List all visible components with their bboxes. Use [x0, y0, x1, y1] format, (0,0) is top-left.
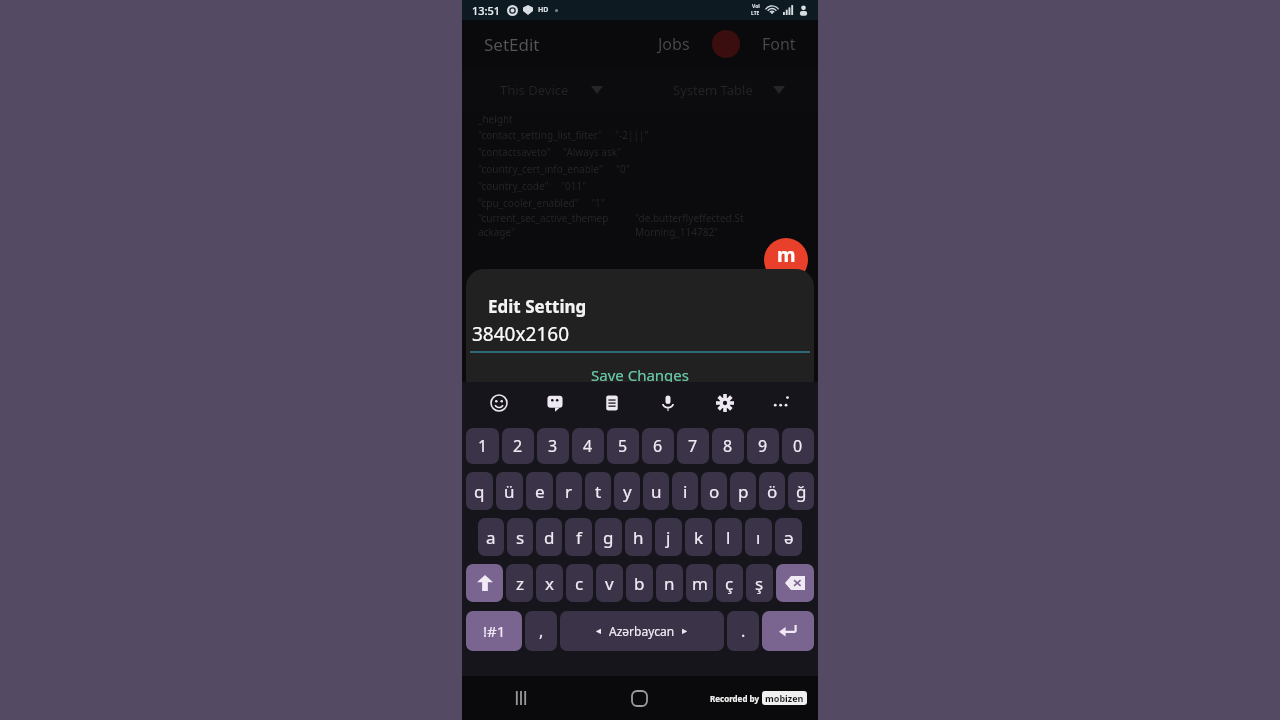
button[interactable]: "contactsaveto": [478, 143, 808, 160]
button[interactable]: ◂: [560, 611, 724, 651]
staticText: 1: [478, 435, 488, 457]
button[interactable]: Record: [712, 30, 740, 58]
button[interactable]: f: [565, 518, 592, 556]
button[interactable]: m: [686, 564, 713, 602]
button[interactable]: 7: [677, 428, 709, 464]
button[interactable]: d: [536, 518, 562, 556]
staticText: 3: [548, 435, 558, 457]
button[interactable]: q: [466, 472, 493, 510]
button[interactable]: This Device: [462, 68, 640, 112]
staticText: x: [545, 572, 554, 595]
button[interactable]: Emoji: [484, 388, 514, 418]
staticText: r: [565, 480, 573, 503]
button[interactable]: a: [478, 518, 504, 556]
button[interactable]: h: [625, 518, 652, 556]
button[interactable]: Settings: [710, 388, 740, 418]
button[interactable]: Jobs: [656, 31, 692, 57]
button[interactable]: "contact_setting_list_filter": [478, 126, 808, 143]
button[interactable]: ,: [525, 611, 557, 651]
button[interactable]: Home: [580, 676, 699, 720]
staticText: c: [575, 572, 584, 595]
button[interactable]: b: [626, 564, 653, 602]
button[interactable]: 8: [712, 428, 744, 464]
staticText: Save Changes: [591, 365, 689, 385]
button[interactable]: e: [526, 472, 553, 510]
button[interactable]: 6: [642, 428, 674, 464]
staticText: "1": [591, 196, 605, 210]
staticText: 2: [513, 435, 523, 457]
button[interactable]: .: [727, 611, 759, 651]
button[interactable]: 3840x2160: [466, 321, 814, 347]
button[interactable]: r: [556, 472, 582, 510]
button[interactable]: ç: [716, 564, 743, 602]
button[interactable]: t: [585, 472, 611, 510]
staticText: u: [651, 480, 662, 503]
button[interactable]: z: [506, 564, 533, 602]
button[interactable]: Stickers: [540, 388, 570, 418]
button[interactable]: 4: [572, 428, 604, 464]
button[interactable]: ş: [746, 564, 773, 602]
staticText: 3840x2160: [472, 321, 569, 347]
staticText: y: [623, 480, 632, 503]
button[interactable]: o: [701, 472, 727, 510]
staticText: 9: [758, 435, 768, 457]
staticText: Recorded by: [710, 693, 762, 704]
button[interactable]: 1: [466, 428, 499, 464]
staticText: SetEdit: [484, 33, 540, 56]
staticText: "contact_setting_list_filter": [478, 128, 603, 142]
button[interactable]: i: [672, 472, 698, 510]
button[interactable]: "cpu_cooler_enabled": [478, 194, 808, 211]
button[interactable]: More options: [766, 388, 796, 418]
button[interactable]: "country_code": [478, 177, 808, 194]
staticText: m: [777, 242, 796, 268]
button[interactable]: s: [507, 518, 533, 556]
button[interactable]: Voice input: [653, 388, 683, 418]
button[interactable]: g: [595, 518, 622, 556]
button[interactable]: SetEdit: [482, 31, 542, 58]
button[interactable]: u: [643, 472, 669, 510]
staticText: Font: [762, 33, 796, 55]
staticText: 4: [583, 435, 593, 457]
button[interactable]: Font: [760, 31, 798, 57]
staticText: ı: [756, 526, 761, 549]
button[interactable]: System Table: [640, 68, 818, 112]
button[interactable]: 2: [502, 428, 534, 464]
button[interactable]: Recent apps: [462, 676, 580, 720]
button[interactable]: ö: [759, 472, 785, 510]
button[interactable]: "current_sec_active_themep: [478, 211, 808, 239]
staticText: "-2|||": [615, 128, 649, 142]
button[interactable]: Save Changes: [466, 353, 814, 397]
button[interactable]: n: [656, 564, 683, 602]
staticText: l: [726, 526, 731, 549]
button[interactable]: ü: [496, 472, 523, 510]
button[interactable]: !#1: [466, 611, 522, 651]
staticText: ə: [784, 526, 794, 549]
button[interactable]: 3: [537, 428, 569, 464]
button[interactable]: 9: [747, 428, 779, 464]
button[interactable]: l: [715, 518, 742, 556]
button[interactable]: Clipboard: [597, 388, 627, 418]
button[interactable]: ğ: [788, 472, 814, 510]
button[interactable]: Mobizen recorder: [764, 238, 808, 282]
button[interactable]: c: [566, 564, 593, 602]
button[interactable]: Shift: [466, 564, 503, 602]
button[interactable]: y: [614, 472, 640, 510]
button[interactable]: Backspace: [776, 564, 814, 602]
staticText: 6: [653, 435, 663, 457]
button[interactable]: ə: [775, 518, 802, 556]
button[interactable]: ı: [745, 518, 772, 556]
button[interactable]: p: [730, 472, 756, 510]
button[interactable]: 0: [782, 428, 814, 464]
button[interactable]: x: [536, 564, 563, 602]
button[interactable]: 5: [607, 428, 639, 464]
button[interactable]: k: [685, 518, 712, 556]
button[interactable]: v: [596, 564, 623, 602]
button[interactable]: j: [655, 518, 682, 556]
button[interactable]: Enter: [762, 611, 814, 651]
staticText: h: [633, 526, 644, 549]
staticText: Jobs: [658, 33, 690, 55]
button[interactable]: "country_cert_info_enable": [478, 160, 808, 177]
